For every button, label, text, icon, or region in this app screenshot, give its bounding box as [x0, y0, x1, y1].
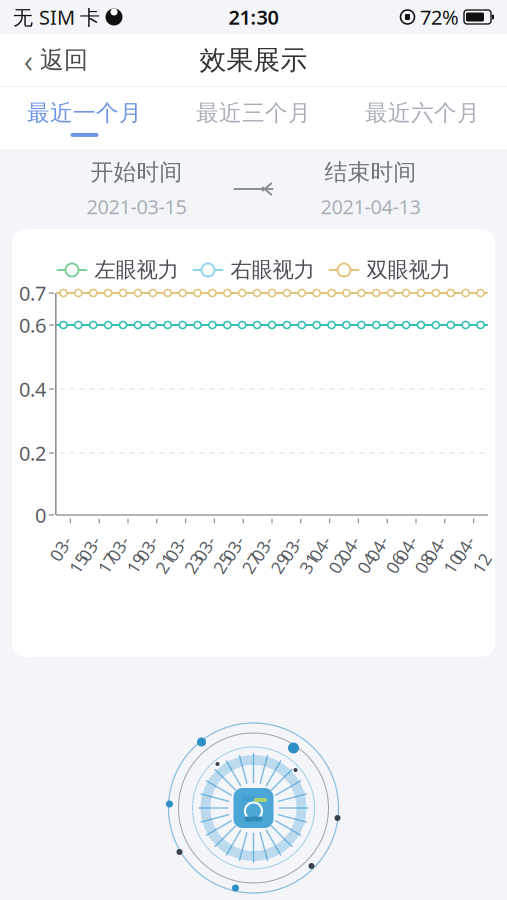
- staticText: 72%: [420, 4, 459, 30]
- staticText: 最近六个月: [365, 99, 480, 127]
- button[interactable]: 最近三个月: [169, 87, 338, 149]
- staticText: 04-12: [461, 531, 487, 577]
- staticText: ‹: [24, 38, 33, 82]
- staticText: 03-19: [115, 531, 141, 577]
- staticText: 04-02: [317, 531, 343, 577]
- staticText: 双眼视力: [366, 257, 450, 283]
- button[interactable]: ‹: [10, 36, 102, 84]
- staticText: 效果展示: [199, 44, 307, 76]
- staticText: 2021-04-13: [320, 193, 420, 220]
- staticText: 0.6: [19, 312, 46, 338]
- staticText: 结束时间: [324, 158, 416, 186]
- staticText: 03-15: [57, 531, 83, 577]
- staticText: 最近三个月: [196, 99, 311, 127]
- staticText: 0: [35, 502, 46, 528]
- staticText: 右眼视力: [230, 257, 314, 283]
- staticText: 04-06: [374, 531, 400, 577]
- button[interactable]: 最近一个月: [0, 87, 169, 149]
- staticText: 03-31: [288, 531, 314, 577]
- staticText: 03-29: [259, 531, 285, 577]
- button[interactable]: 最近六个月: [338, 87, 507, 149]
- staticText: 左眼视力: [94, 257, 178, 283]
- staticText: 0.7: [19, 280, 46, 306]
- staticText: 03-17: [86, 531, 112, 577]
- staticText: 03-25: [201, 531, 227, 577]
- staticText: 0.2: [19, 440, 46, 466]
- staticText: 无 SIM 卡: [13, 4, 100, 30]
- staticText: 04-04: [345, 531, 371, 577]
- button[interactable]: 开始时间: [41, 150, 231, 228]
- staticText: 返回: [40, 45, 88, 75]
- staticText: 21:30: [228, 4, 278, 30]
- staticText: 03-21: [144, 531, 170, 577]
- staticText: 04-10: [432, 531, 458, 577]
- staticText: 03-23: [173, 531, 199, 577]
- staticText: 04-08: [403, 531, 429, 577]
- staticText: 03-27: [230, 531, 256, 577]
- button[interactable]: 结束时间: [275, 150, 465, 228]
- staticText: 最近一个月: [27, 99, 142, 127]
- staticText: 0.4: [19, 376, 46, 402]
- staticText: 开始时间: [90, 158, 182, 186]
- staticText: 2021-03-15: [86, 193, 186, 220]
